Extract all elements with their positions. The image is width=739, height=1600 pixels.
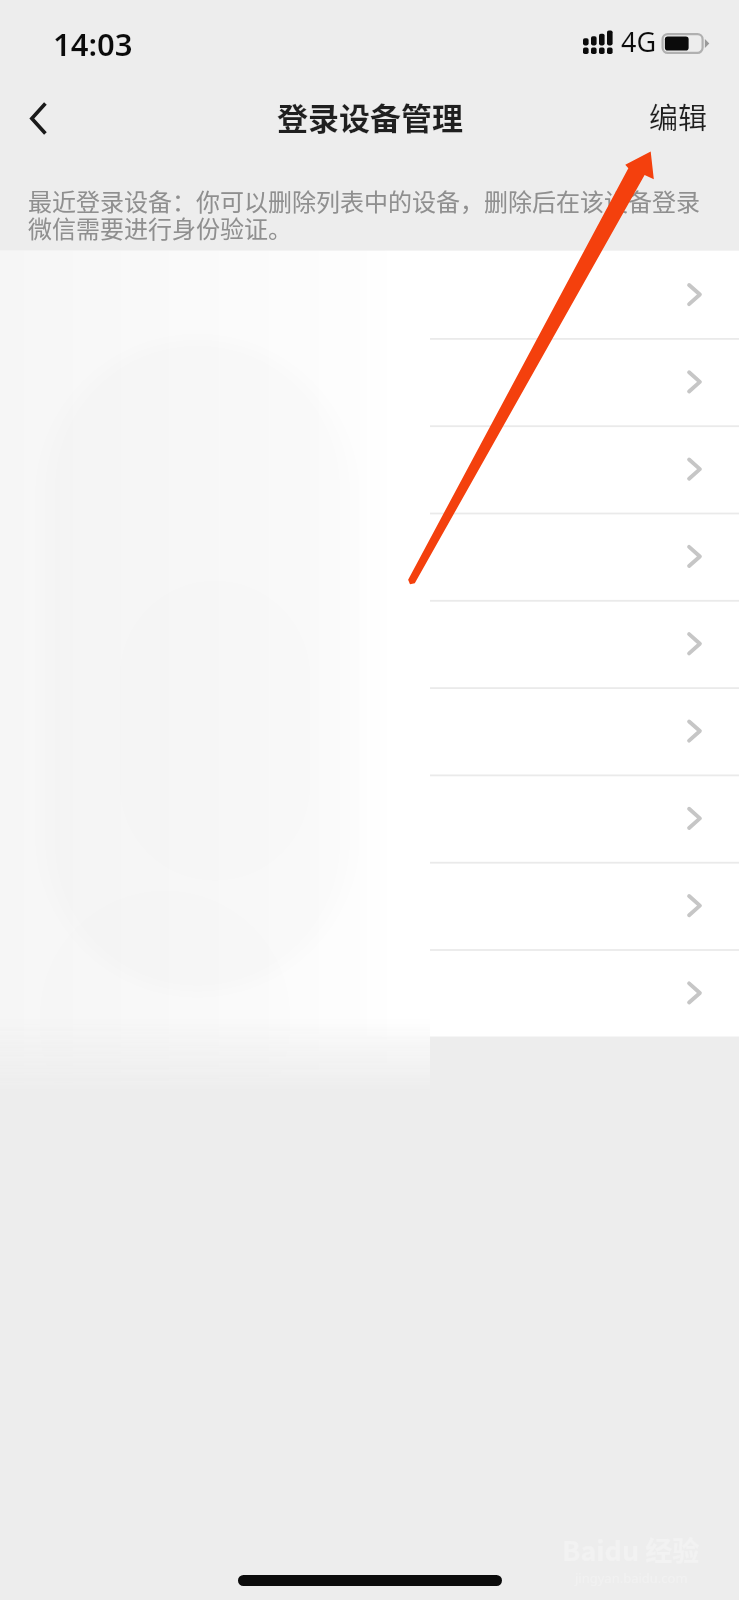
button[interactable]: Logged-in device 7: [0, 773, 739, 860]
button[interactable]: Back: [0, 82, 80, 158]
button[interactable]: Logged-in device 1: [0, 251, 739, 338]
staticText: 最近登录设备：你可以删除列表中的设备，删除后在该设备登录微信需要进行身份验证。: [28, 183, 721, 245]
button[interactable]: 编辑: [618, 82, 739, 158]
button[interactable]: Logged-in device 6: [0, 686, 739, 773]
staticText: 14:03: [53, 23, 133, 65]
staticText: 登录设备管理: [277, 94, 463, 139]
button[interactable]: Logged-in device 5: [0, 599, 739, 686]
button[interactable]: Logged-in device 4: [0, 512, 739, 599]
button[interactable]: Logged-in device 2: [0, 338, 739, 425]
button[interactable]: Logged-in device 9: [0, 947, 739, 1034]
button[interactable]: Logged-in device 3: [0, 425, 739, 512]
button[interactable]: Logged-in device 8: [0, 860, 739, 947]
staticText: 编辑: [649, 95, 708, 137]
staticText: 4G: [621, 23, 657, 60]
